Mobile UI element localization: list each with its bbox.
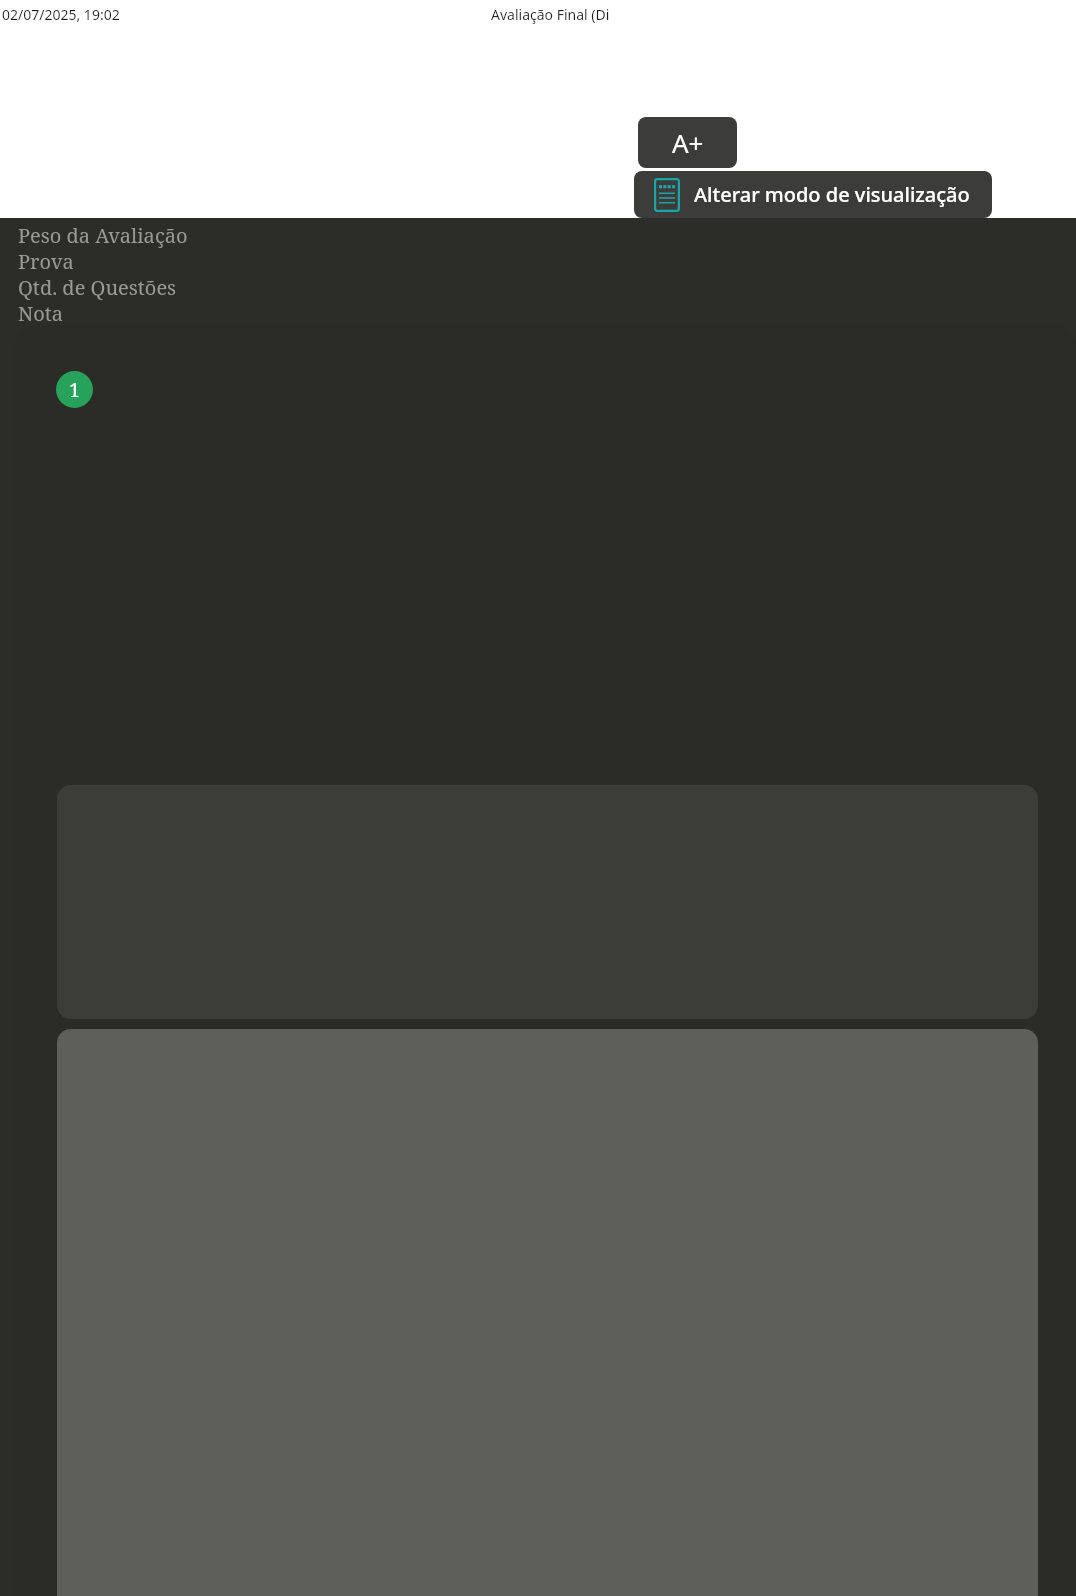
other: Alterar modo de visualização [654,178,680,212]
staticText: Alterar modo de visualização [694,181,970,208]
staticText: Qtd. de Questões [18,274,177,300]
button[interactable]: 1 [56,371,93,408]
staticText: Avaliação Final (Di [491,5,610,24]
button[interactable]: Alterar modo de visualização [634,171,992,218]
staticText: A+ [672,125,704,160]
staticText: Nota [18,300,64,326]
staticText: 02/07/2025, 19:02 [2,5,120,24]
button[interactable]: A+ [638,117,737,168]
staticText: 1 [69,377,80,403]
staticText: Prova [18,248,74,274]
staticText: Peso da Avaliação [18,222,188,248]
